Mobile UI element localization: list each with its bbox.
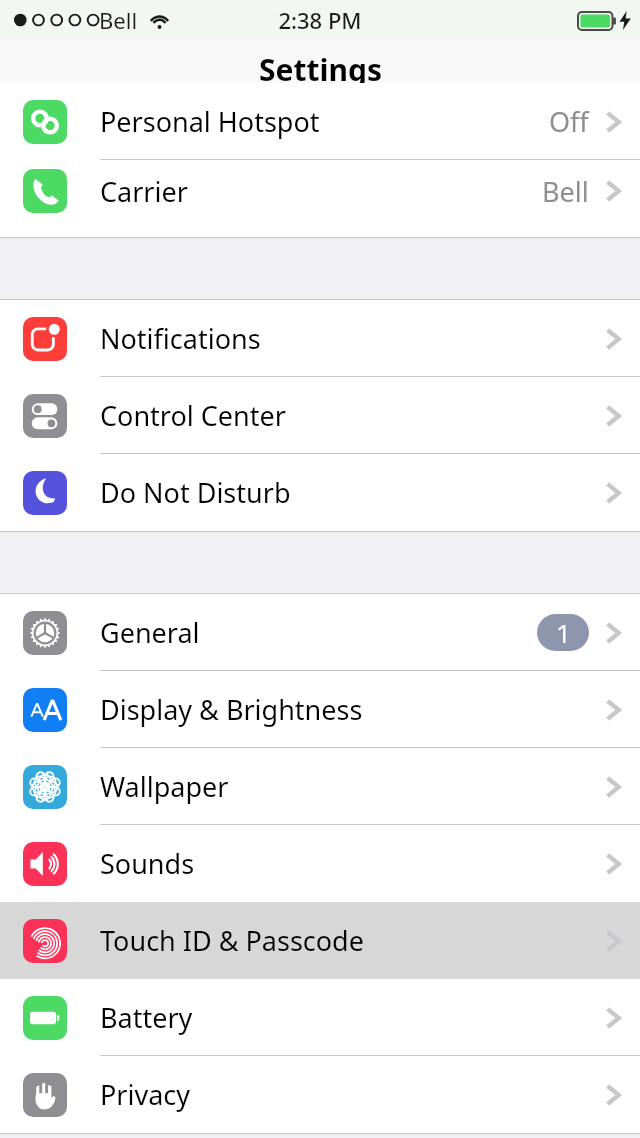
button[interactable]: Carrier [0,160,640,222]
staticText: Carrier [100,173,188,210]
button[interactable]: Notifications [0,300,640,377]
button[interactable]: General [0,594,640,671]
button[interactable]: Control Center [0,377,640,454]
staticText: Wallpaper [100,768,229,805]
button[interactable]: Battery [0,979,640,1056]
staticText: Privacy [100,1076,191,1113]
other: Open Notifications [604,324,622,354]
staticText: Settings [259,49,382,90]
other: Open General [604,618,622,648]
staticText: Off [549,103,589,140]
other: Open Wallpaper [604,772,622,802]
other: Open Touch ID & Passcode [604,926,622,956]
staticText: 2:38 PM [278,5,362,35]
other: Open Carrier [604,176,622,206]
staticText: Bell [99,5,138,35]
other: Open Sounds [604,849,622,879]
staticText: Battery [100,999,193,1036]
staticText: Touch ID & Passcode [100,922,364,959]
other: Open Personal Hotspot [604,107,622,137]
button[interactable]: Personal Hotspot [0,83,640,160]
staticText: Display & Brightness [100,691,363,728]
staticText: Control Center [100,397,286,434]
button[interactable]: Sounds [0,825,640,902]
staticText: Notifications [100,320,261,357]
other: Open Display & Brightness [604,695,622,725]
button[interactable]: Display & Brightness [0,671,640,748]
button[interactable]: Wallpaper [0,748,640,825]
staticText: 1 [556,615,571,650]
button[interactable]: Privacy [0,1056,640,1133]
staticText: General [100,614,200,651]
button[interactable]: Touch ID & Passcode [0,902,640,979]
other: Open Battery [604,1003,622,1033]
staticText: Bell [542,173,589,210]
button[interactable]: Do Not Disturb [0,454,640,531]
other: Open Control Center [604,401,622,431]
staticText: Sounds [100,845,195,882]
staticText: Do Not Disturb [100,474,291,511]
staticText: Personal Hotspot [100,103,320,140]
other: Open Do Not Disturb [604,478,622,508]
other: Open Privacy [604,1080,622,1110]
